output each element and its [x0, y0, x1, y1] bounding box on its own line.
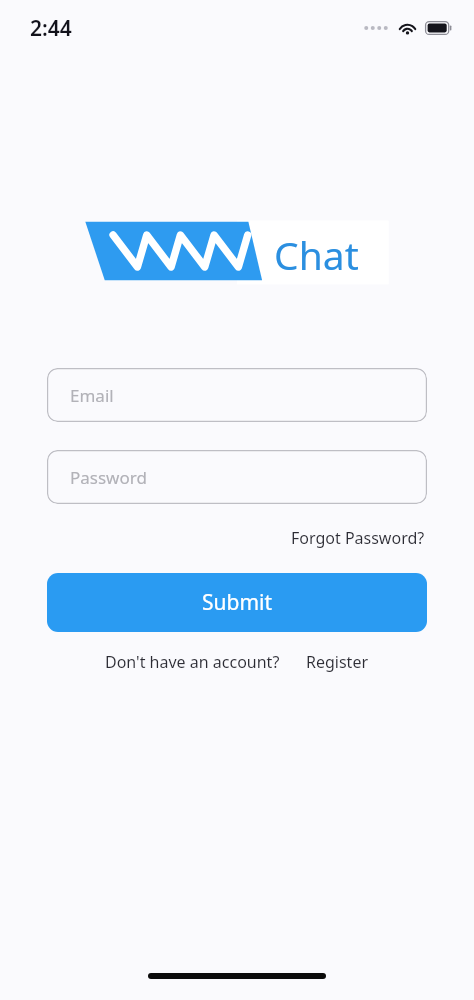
staticText: Forgot Password?	[291, 527, 425, 549]
staticText: Don't have an account?	[105, 651, 280, 673]
button[interactable]: Submit	[47, 573, 427, 632]
staticText: Chat	[274, 228, 359, 281]
button[interactable]: Don't have an account?	[105, 646, 280, 678]
button[interactable]: Forgot Password?	[289, 522, 427, 554]
staticText: Register	[306, 651, 369, 673]
button[interactable]: Email	[47, 368, 427, 422]
staticText: Password	[70, 466, 147, 489]
staticText: 2:44	[30, 14, 72, 43]
button[interactable]: Register	[306, 646, 369, 678]
button[interactable]: Password	[47, 450, 427, 504]
staticText: Email	[70, 384, 114, 407]
staticText: Submit	[202, 588, 273, 617]
